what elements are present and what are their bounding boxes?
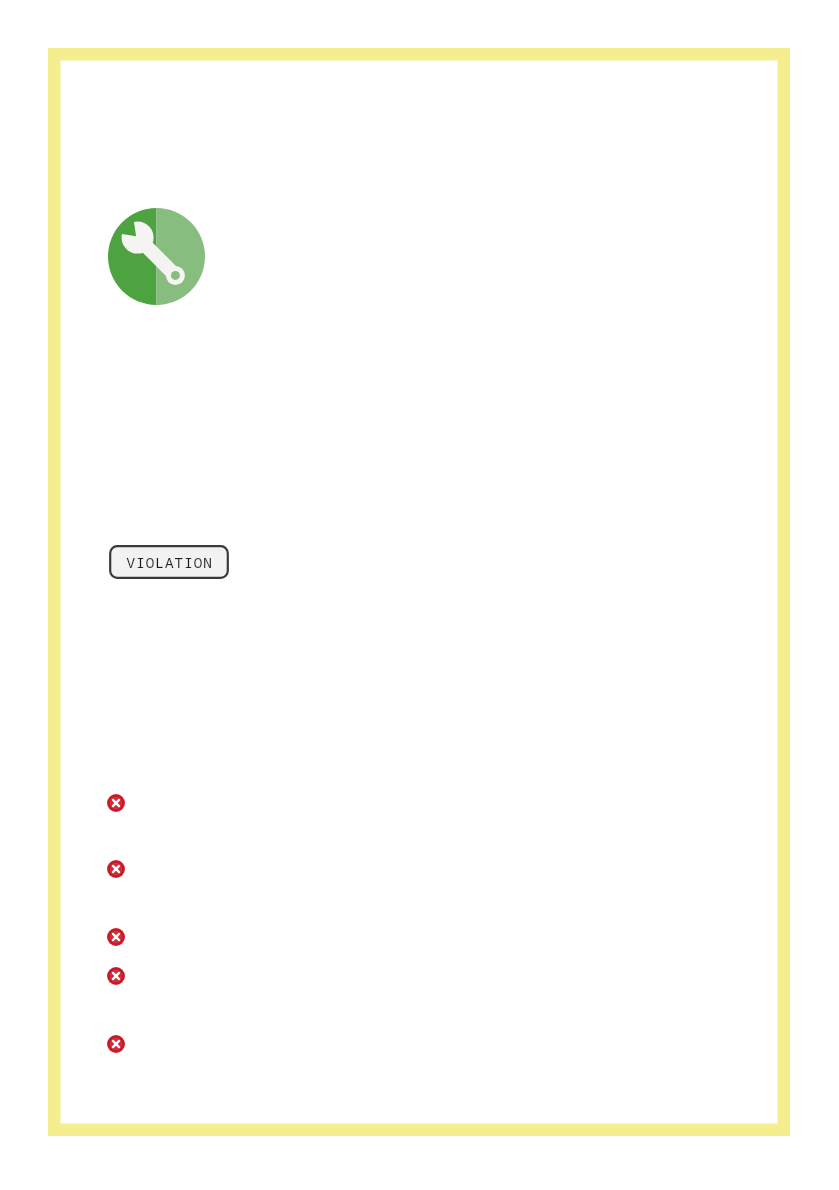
- button[interactable]: Tools: [108, 208, 205, 305]
- button[interactable]: Error: [107, 794, 125, 812]
- button[interactable]: Error: [107, 1035, 125, 1053]
- staticText: VIOLATION: [126, 552, 213, 572]
- button[interactable]: Error: [107, 928, 125, 946]
- button[interactable]: Error: [107, 967, 125, 985]
- button[interactable]: Error: [107, 860, 125, 878]
- button[interactable]: VIOLATION: [109, 545, 229, 579]
